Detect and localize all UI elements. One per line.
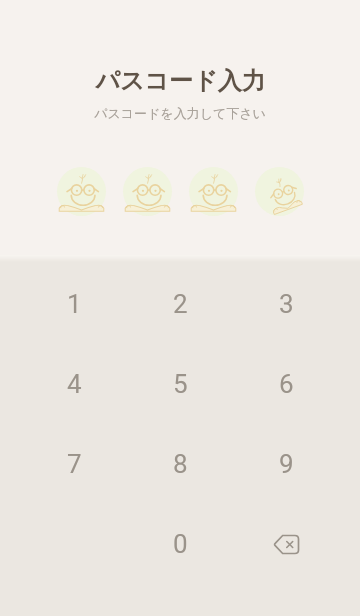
button[interactable]: 0 [127, 504, 233, 584]
button[interactable]: 7 [21, 424, 127, 504]
button[interactable]: Backspace [233, 504, 339, 584]
staticText: 5 [173, 369, 188, 399]
staticText: 2 [173, 289, 188, 319]
button[interactable]: 5 [127, 344, 233, 424]
button[interactable]: 9 [233, 424, 339, 504]
staticText: パスコード入力 [95, 66, 266, 96]
staticText: 0 [173, 529, 188, 559]
button[interactable]: 8 [127, 424, 233, 504]
staticText: 3 [279, 289, 294, 319]
button[interactable]: 3 [233, 264, 339, 344]
staticText: 9 [279, 449, 294, 479]
staticText: 4 [67, 369, 82, 399]
other: Backspace [274, 535, 299, 554]
button[interactable]: 6 [233, 344, 339, 424]
staticText: 6 [279, 369, 294, 399]
button[interactable]: 4 [21, 344, 127, 424]
staticText: パスコードを入力して下さい [94, 105, 266, 121]
staticText: 1 [67, 289, 82, 319]
staticText: 8 [173, 449, 188, 479]
staticText: 7 [67, 449, 82, 479]
button[interactable]: 1 [21, 264, 127, 344]
button[interactable]: 2 [127, 264, 233, 344]
